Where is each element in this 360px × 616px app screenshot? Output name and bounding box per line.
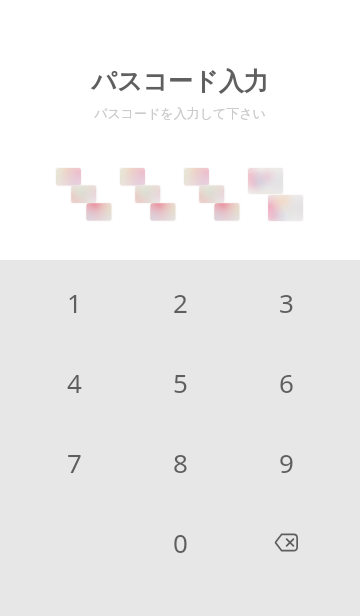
staticText: 3 (279, 285, 294, 320)
staticText: 6 (279, 365, 294, 400)
button[interactable]: 9 (233, 422, 339, 502)
button[interactable]: 0 (127, 502, 233, 582)
staticText: パスコード入力 (91, 66, 269, 97)
button[interactable]: 5 (127, 342, 233, 422)
staticText: 0 (173, 525, 188, 560)
button[interactable]: 1 (21, 262, 127, 342)
button[interactable]: 4 (21, 342, 127, 422)
staticText: 1 (67, 285, 82, 320)
staticText: 5 (173, 365, 188, 400)
button[interactable]: 7 (21, 422, 127, 502)
button[interactable]: 8 (127, 422, 233, 502)
button[interactable]: 2 (127, 262, 233, 342)
staticText: 4 (67, 365, 82, 400)
staticText: 7 (67, 445, 82, 480)
button[interactable]: 3 (233, 262, 339, 342)
button[interactable]: 6 (233, 342, 339, 422)
staticText: パスコードを入力して下さい (94, 105, 266, 121)
staticText: 2 (173, 285, 188, 320)
staticText: 9 (279, 445, 294, 480)
button[interactable]: Delete (233, 502, 339, 582)
staticText: 8 (173, 445, 188, 480)
